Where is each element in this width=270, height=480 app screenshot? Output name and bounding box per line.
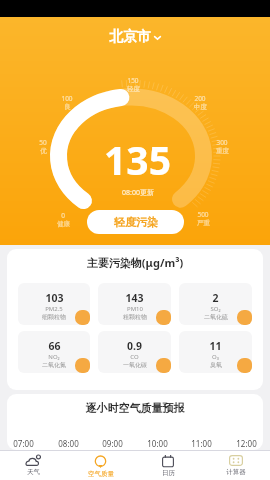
button[interactable]: 0.9 [98, 331, 171, 373]
button[interactable]: 轻度污染 [87, 210, 184, 234]
staticText: 500 [197, 210, 209, 219]
staticText: 细颗粒物 [42, 313, 66, 321]
staticText: SO₂ [210, 305, 221, 313]
staticText: 中度 [194, 103, 207, 111]
staticText: NO₂ [48, 353, 60, 361]
button[interactable]: 103 [18, 283, 90, 325]
staticText: CO [130, 353, 139, 361]
staticText: 12:00 [236, 438, 257, 449]
staticText: 10:00 [147, 438, 168, 449]
staticText: 一氧化碳 [123, 361, 147, 369]
staticText: 轻度污染 [114, 215, 158, 229]
staticText: 100 [61, 94, 73, 103]
staticText: 计算器 [226, 468, 246, 476]
button[interactable]: 11 [179, 331, 252, 373]
staticText: 0.9 [127, 339, 142, 353]
staticText: 200 [194, 94, 206, 103]
staticText: 优 [40, 147, 47, 155]
staticText: 50 [39, 138, 47, 147]
staticText: 11:00 [191, 438, 212, 449]
staticText: 健康 [57, 220, 70, 228]
staticText: 北京市 [109, 28, 151, 46]
button[interactable]: 日历 [134, 451, 202, 480]
staticText: 空气质量 [88, 470, 114, 478]
staticText: 09:00 [102, 438, 123, 449]
staticText: 0 [61, 211, 65, 220]
staticText: 严重 [197, 219, 210, 227]
staticText: 日历 [162, 469, 175, 477]
staticText: 150 [127, 76, 139, 85]
button[interactable]: 143 [98, 283, 171, 325]
staticText: 二氧化硫 [204, 313, 228, 321]
staticText: 主要污染物(μg/m³) [7, 255, 263, 270]
staticText: 103 [45, 291, 64, 305]
button[interactable]: 2 [179, 283, 252, 325]
staticText: 300 [216, 138, 228, 147]
staticText: PM10 [127, 305, 143, 313]
button[interactable]: 天气 [0, 451, 67, 480]
button[interactable]: 北京市 [103, 26, 168, 48]
staticText: 08:00 [58, 438, 79, 449]
staticText: 143 [125, 291, 144, 305]
staticText: 良 [64, 103, 71, 111]
staticText: 臭氧 [210, 361, 222, 369]
staticText: 11 [209, 339, 222, 353]
staticText: 135 [104, 133, 171, 186]
staticText: 粗颗粒物 [123, 313, 147, 321]
staticText: 轻度 [127, 85, 140, 93]
staticText: 天气 [27, 468, 40, 476]
staticText: PM2.5 [45, 305, 63, 313]
staticText: 2 [212, 291, 219, 305]
staticText: 08:00更新 [122, 188, 154, 198]
button[interactable]: 空气质量 [67, 451, 134, 480]
staticText: O₃ [212, 353, 219, 361]
staticText: 逐小时空气质量预报 [7, 401, 263, 415]
staticText: 二氧化氮 [42, 361, 66, 369]
staticText: 重度 [216, 147, 229, 155]
button[interactable]: 计算器 [202, 451, 270, 480]
button[interactable]: 66 [18, 331, 90, 373]
staticText: 66 [48, 339, 61, 353]
staticText: 07:00 [13, 438, 34, 449]
other: 空气质量 [94, 455, 107, 468]
